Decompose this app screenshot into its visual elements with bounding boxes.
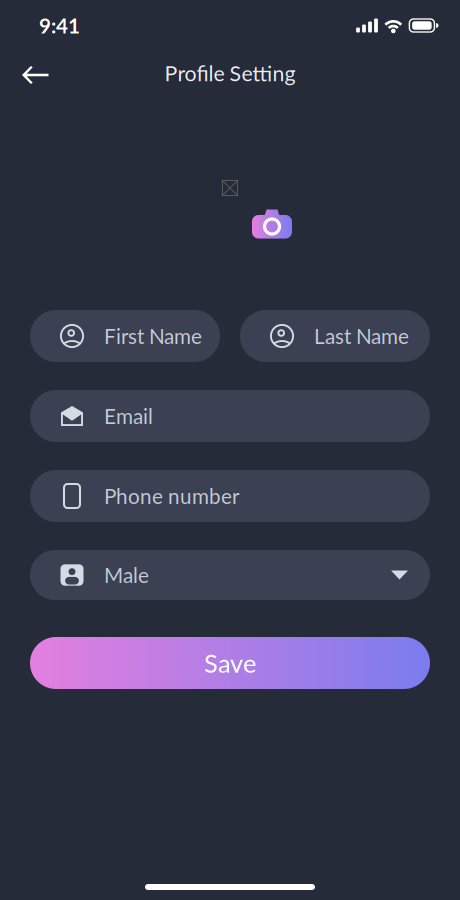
button[interactable]: Last Name — [240, 310, 430, 362]
button[interactable]: Back — [12, 53, 58, 97]
staticText: Save — [204, 648, 256, 678]
staticText: Last Name — [314, 324, 409, 348]
button[interactable]: Male — [30, 550, 430, 600]
button[interactable]: Phone number — [30, 470, 430, 522]
button[interactable]: Save — [30, 637, 430, 689]
staticText: First Name — [104, 324, 202, 348]
staticText: Male — [104, 563, 149, 587]
button[interactable]: First Name — [30, 310, 220, 362]
staticText: 9:41 — [39, 13, 80, 38]
staticText: Profile Setting — [164, 60, 295, 86]
image — [222, 180, 238, 196]
staticText: Email — [104, 404, 153, 428]
button[interactable]: Change photo — [175, 133, 285, 243]
button[interactable]: Email — [30, 390, 430, 442]
staticText: Phone number — [104, 484, 240, 508]
